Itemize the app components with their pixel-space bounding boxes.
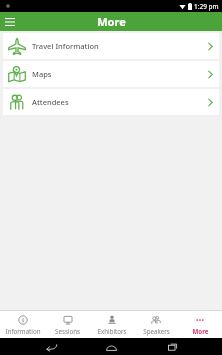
staticText: Information: [5, 327, 41, 335]
button[interactable]: Open navigation menu: [0, 12, 19, 31]
staticText: Maps: [32, 69, 208, 79]
button[interactable]: Speakers: [134, 311, 178, 338]
button[interactable]: Home: [101, 338, 121, 355]
button[interactable]: Maps: [3, 61, 219, 87]
staticText: Exhibitors: [97, 327, 127, 335]
staticText: Attendees: [32, 97, 208, 107]
staticText: Travel Information: [32, 41, 208, 51]
button[interactable]: Attendees: [3, 89, 219, 115]
staticText: More: [97, 14, 126, 29]
button[interactable]: More: [178, 311, 222, 338]
staticText: Speakers: [143, 327, 170, 335]
staticText: Sessions: [55, 327, 80, 335]
button[interactable]: Exhibitors: [90, 311, 134, 338]
button[interactable]: Travel Information: [3, 33, 219, 59]
button[interactable]: Recent apps: [162, 338, 182, 355]
button[interactable]: Sessions: [45, 311, 90, 338]
staticText: 1:29 pm: [194, 2, 219, 11]
button[interactable]: Information: [0, 311, 45, 338]
button[interactable]: Back: [41, 338, 61, 355]
staticText: More: [192, 327, 209, 335]
